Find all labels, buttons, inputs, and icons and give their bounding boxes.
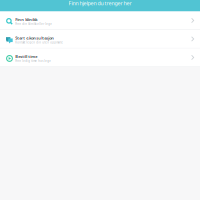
staticText: Finn klinikk [15,17,37,22]
staticText: Finn din klinikk eller lege [15,22,52,26]
button[interactable]: Bestill time [0,48,200,67]
staticText: Bestill time [15,54,37,59]
staticText: Finn hjelpen du trenger her [68,0,131,7]
staticText: Start e-konsultasjon [15,35,54,41]
button[interactable]: Finn klinikk [0,11,200,30]
staticText: Finn ledig time hos lege [15,59,51,63]
staticText: Kontakt legen din uten oppmøte [15,41,63,44]
button[interactable]: Start e-konsultasjon [0,30,200,48]
